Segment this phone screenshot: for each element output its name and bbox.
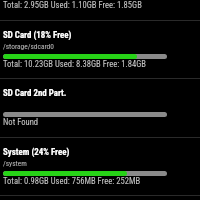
staticText: /system [3,159,27,168]
button[interactable]: System (24% Free) [0,138,200,195]
staticText: /storage/sdcard0 [3,42,54,51]
staticText: Not Found [3,117,39,127]
staticText: Total: 2.95GB Used: 1.10GB Free: 1.85GB [3,0,142,10]
staticText: SD Card 2nd Part. [3,88,67,98]
staticText: Total: 0.98GB Used: 756MB Free: 252MB [3,176,141,186]
staticText: System (24% Free) [3,147,70,157]
staticText: Total: 10.23GB Used: 8.38GB Free: 1.84GB [3,59,147,69]
staticText: SD Card (18% Free) [3,30,72,40]
button[interactable]: SD Card (18% Free) [0,21,200,78]
button[interactable]: SD Card 2nd Part. [0,79,200,136]
